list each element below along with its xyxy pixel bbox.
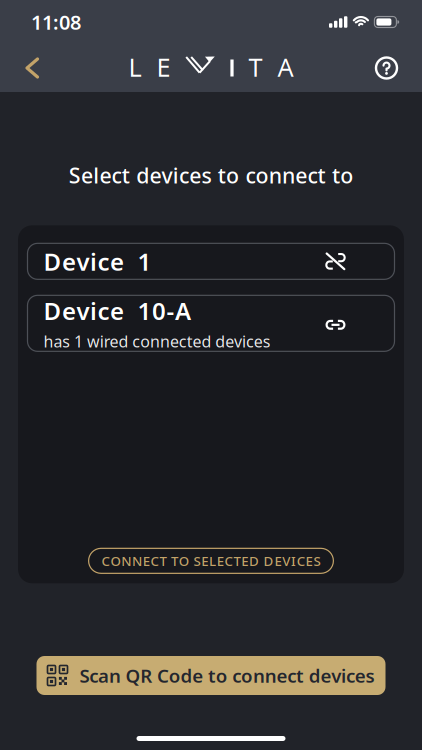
button[interactable]: Scan QR Code to connect devices [36,656,385,695]
staticText: 11:08 [31,9,81,35]
button[interactable] [376,57,422,78]
staticText: L [128,50,141,84]
staticText: Scan QR Code to connect devices [79,663,374,688]
button[interactable] [0,57,39,78]
staticText: Device 10-A [43,295,191,327]
staticText: Select devices to connect to [69,161,353,189]
staticText: E [156,50,170,84]
staticText: A [278,50,294,84]
staticText: T [249,50,263,84]
button[interactable]: Device 10-A [27,295,394,351]
button[interactable]: Device 1 [27,243,394,279]
staticText: CONNECT TO SELECTED DEVICES [102,552,320,570]
button[interactable]: CONNECT TO SELECTED DEVICES [89,548,333,573]
staticText: Device 1 [43,245,151,277]
staticText: has 1 wired connected devices [43,331,271,352]
